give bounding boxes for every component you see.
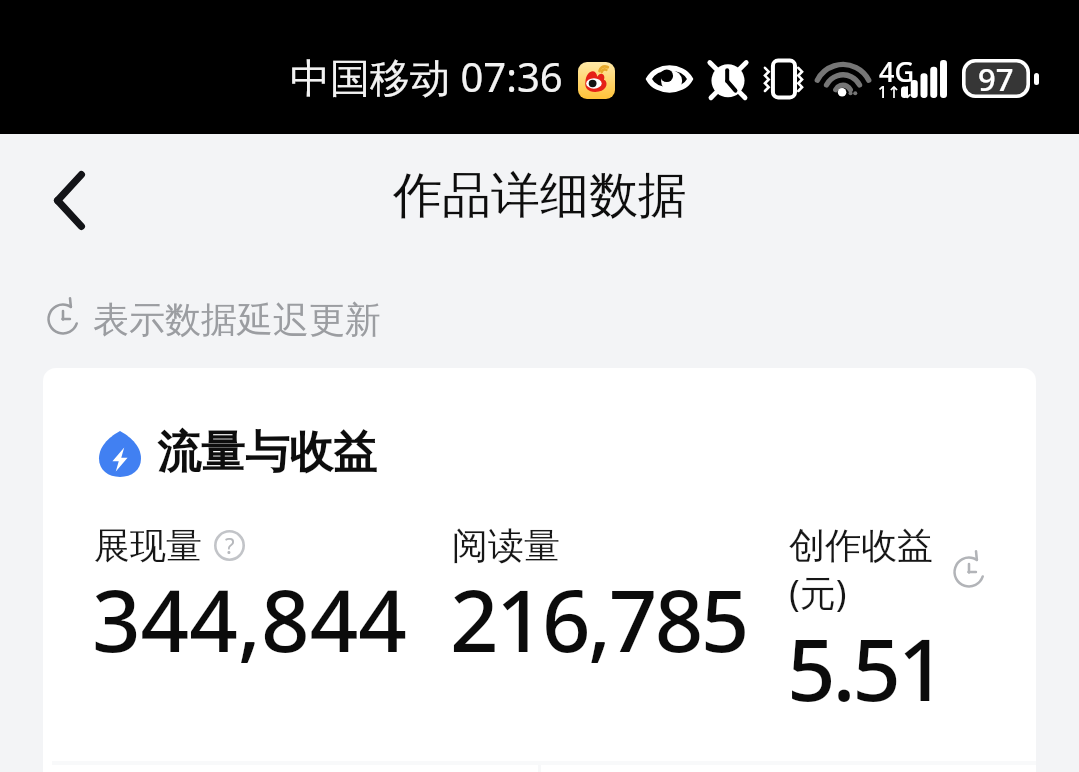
staticText: 表示数据延迟更新 — [93, 297, 381, 342]
staticText: 1↑↓ — [878, 81, 914, 103]
button[interactable]: 阅读量 — [452, 523, 782, 684]
staticText: 中国移动 07:36 — [290, 49, 563, 104]
staticText: 创作收益 — [789, 523, 933, 568]
button[interactable]: What is 展现量 — [214, 530, 245, 561]
staticText: 展现量 — [94, 523, 202, 568]
button[interactable]: Back — [25, 156, 113, 244]
button[interactable]: Data updated with a delay — [952, 555, 986, 589]
staticText: 流量与收益 — [157, 425, 377, 480]
staticText: 4G — [879, 53, 915, 90]
staticText: (元) — [789, 568, 847, 617]
staticText: 216,785 — [450, 561, 747, 677]
staticText: ? — [225, 530, 235, 560]
staticText: 阅读量 — [452, 523, 560, 568]
staticText: 作品详细数据 — [393, 165, 687, 227]
staticText: 5.51 — [787, 610, 944, 726]
button[interactable]: 创作收益 — [789, 523, 1035, 733]
staticText: 97 — [978, 58, 1014, 97]
staticText: 344,844 — [92, 561, 407, 677]
button[interactable]: 展现量 — [94, 523, 444, 684]
